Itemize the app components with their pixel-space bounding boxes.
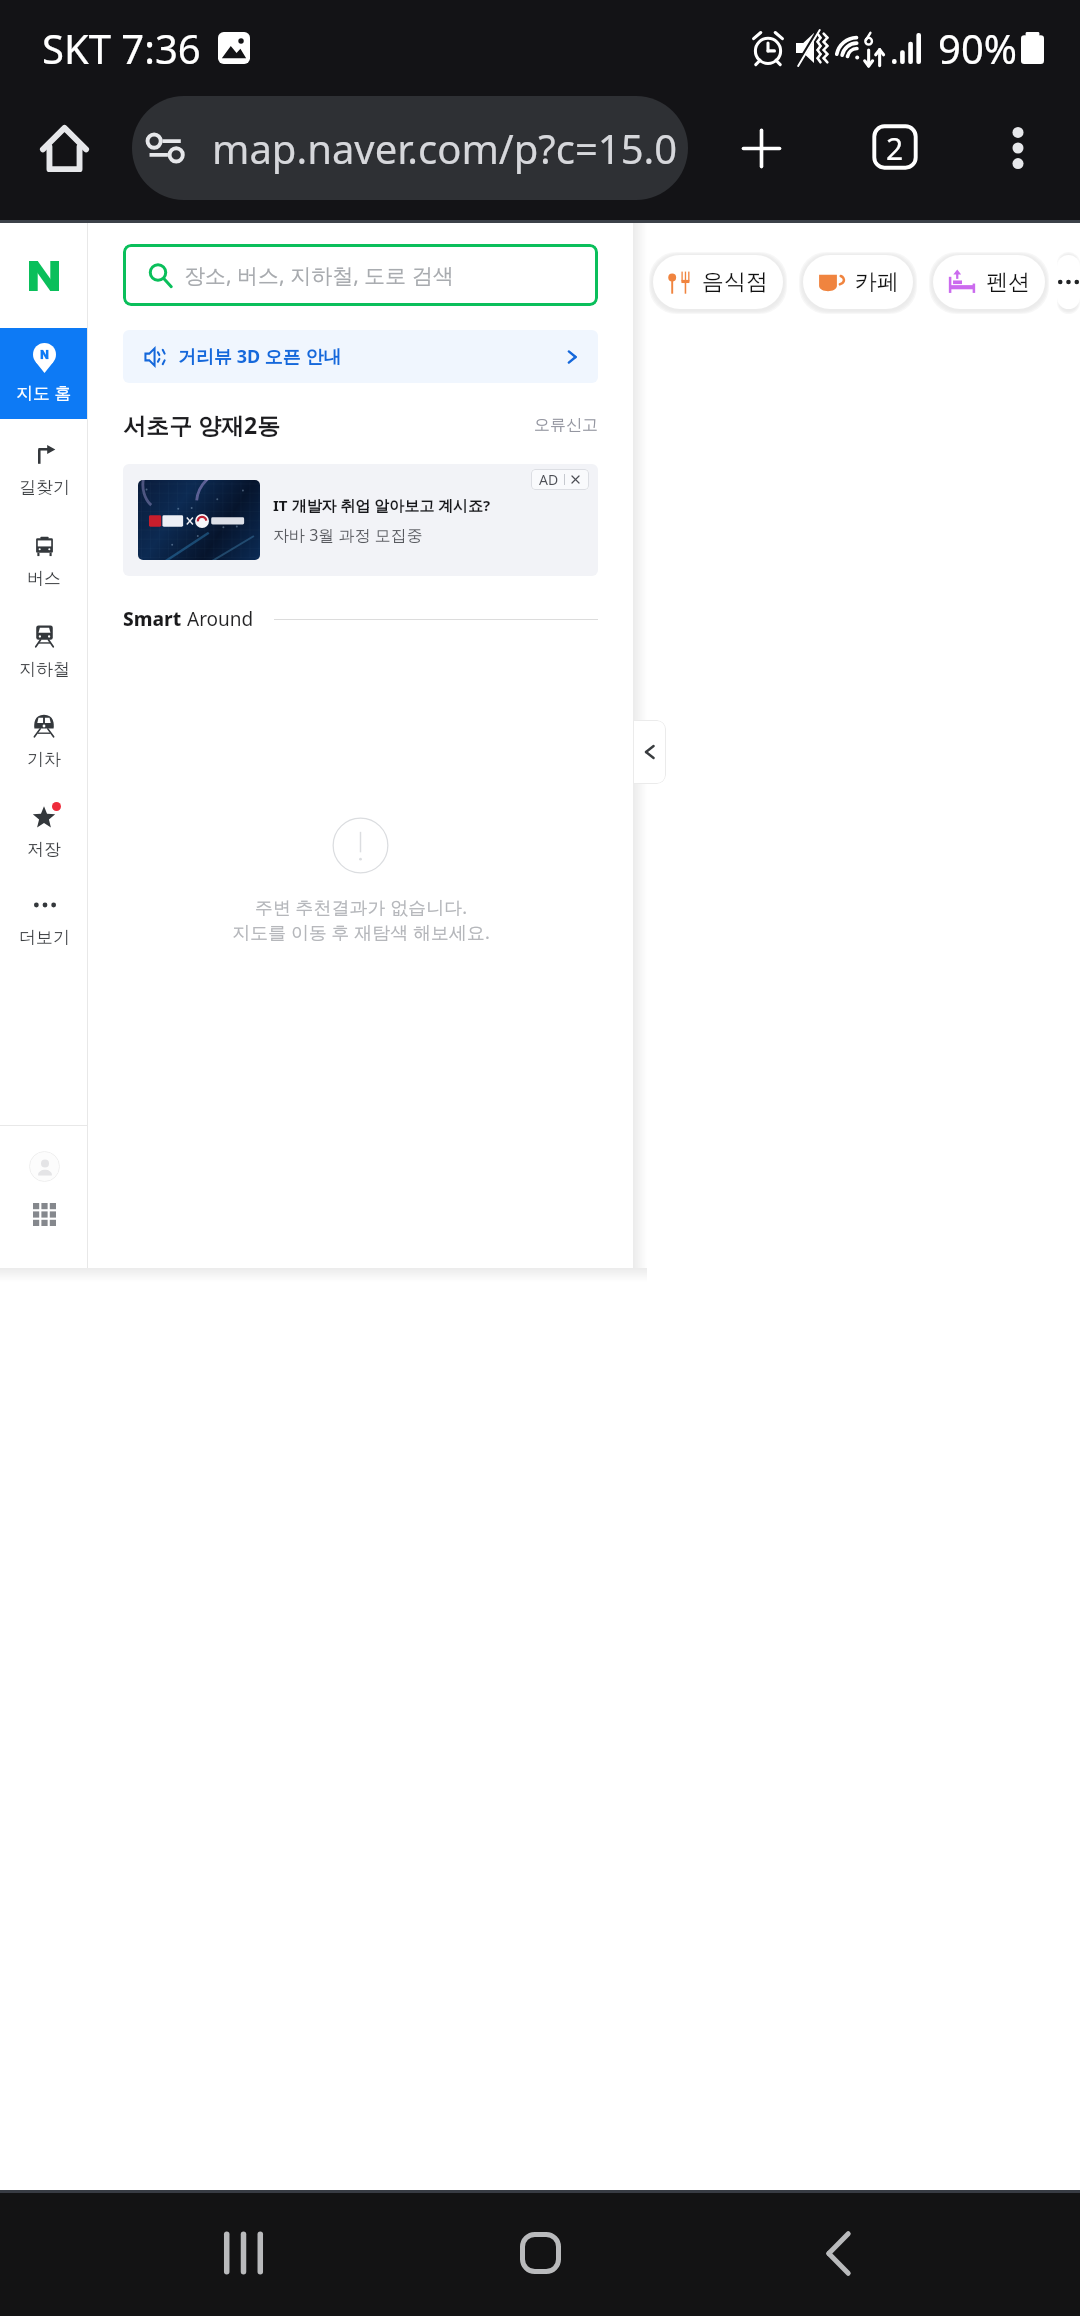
staticText: 2 <box>886 128 904 169</box>
button[interactable]: More options <box>956 96 1080 200</box>
button[interactable]: 지하철 <box>0 599 88 689</box>
button[interactable]: 저장 <box>0 779 88 869</box>
staticText: 자바 3월 과정 모집중 <box>273 524 423 546</box>
staticText: 펜션 <box>986 268 1030 296</box>
staticText: 길찾기 <box>19 477 70 498</box>
staticText: 지도 홈 <box>16 381 72 404</box>
button[interactable]: 오류신고 <box>534 415 598 435</box>
staticText: 저장 <box>27 839 61 860</box>
staticText: 기차 <box>27 749 61 770</box>
button[interactable]: 장소, 버스, 지하철, 도로 검색 <box>123 244 598 306</box>
button[interactable]: More categories <box>1057 255 1080 309</box>
button[interactable]: 지도 홈 <box>0 328 88 419</box>
button[interactable]: 펜션 <box>933 255 1045 309</box>
staticText: Around <box>187 606 254 632</box>
staticText: 카페 <box>855 268 899 296</box>
staticText: 서초구 양재2동 <box>123 409 281 440</box>
button[interactable]: map.naver.com/p?c=15.0 <box>132 96 688 200</box>
button[interactable]: Home <box>485 2198 595 2308</box>
staticText: 오류신고 <box>534 415 598 435</box>
button[interactable]: 카페 <box>803 255 913 309</box>
button[interactable]: Collapse panel <box>633 720 666 784</box>
staticText: 지하철 <box>19 659 70 680</box>
button[interactable]: Profile <box>29 1151 60 1182</box>
staticText: 음식점 <box>702 268 768 296</box>
button[interactable]: 음식점 <box>653 255 783 309</box>
staticText: 90% <box>938 21 1017 75</box>
staticText: AD <box>539 470 559 489</box>
button[interactable]: 거리뷰 3D 오픈 안내 <box>123 330 598 383</box>
button[interactable]: Home <box>24 108 104 188</box>
button[interactable]: Apps <box>29 1199 60 1230</box>
staticText: 주변 추천결과가 없습니다. 지도를 이동 후 재탐색 해보세요. <box>232 895 490 944</box>
button[interactable]: IT 개발자 취업 알아보고 계시죠? <box>123 464 598 576</box>
button[interactable]: Tabs <box>834 96 956 200</box>
staticText: SKT 7:36 <box>42 21 201 75</box>
staticText: map.naver.com/p?c=15.0 <box>212 121 678 175</box>
button[interactable]: AD <box>531 469 589 490</box>
staticText: Smart <box>123 606 187 632</box>
staticText: IT 개발자 취업 알아보고 계시죠? <box>273 495 491 515</box>
button[interactable]: New tab <box>688 96 834 200</box>
staticText: 더보기 <box>19 927 70 948</box>
button[interactable]: Back <box>783 2198 893 2308</box>
staticText: 거리뷰 3D 오픈 안내 <box>178 344 342 369</box>
button[interactable]: 길찾기 <box>0 419 88 509</box>
button[interactable]: Naver <box>0 223 88 328</box>
button[interactable]: Recents <box>188 2198 298 2308</box>
button[interactable]: 더보기 <box>0 869 88 959</box>
staticText: 장소, 버스, 지하철, 도로 검색 <box>184 261 454 290</box>
button[interactable]: 기차 <box>0 689 88 779</box>
button[interactable]: 버스 <box>0 509 88 599</box>
staticText: 버스 <box>27 568 61 589</box>
